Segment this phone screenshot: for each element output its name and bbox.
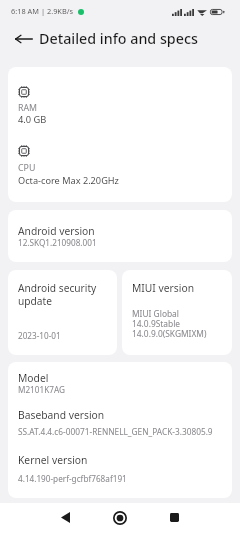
staticText: 4.14.190-perf-gcfbf768af191: [18, 473, 127, 484]
staticText: Kernel version: [18, 453, 88, 467]
button[interactable]: Back: [11, 26, 37, 52]
button[interactable]: MIUI version: [122, 270, 232, 355]
button[interactable]: RAM: [8, 67, 232, 202]
staticText: Octa-core Max 2.20GHz: [18, 174, 119, 187]
button[interactable]: Back: [50, 502, 80, 532]
staticText: MIUI version: [132, 281, 194, 295]
staticText: 6:18 AM | 2.9KB/s: [11, 6, 74, 16]
staticText: 12.SKQ1.210908.001: [18, 237, 97, 248]
staticText: 2023-10-01: [18, 330, 61, 341]
staticText: M2101K7AG: [18, 384, 65, 395]
staticText: Baseband version: [18, 408, 105, 422]
button[interactable]: Model: [8, 362, 232, 498]
staticText: Android version: [18, 224, 95, 238]
button[interactable]: Home: [105, 503, 135, 533]
staticText: 4.0 GB: [18, 113, 47, 126]
button[interactable]: Android version: [8, 210, 232, 262]
staticText: Model: [18, 371, 49, 385]
button[interactable]: Recent apps: [159, 502, 189, 532]
staticText: MIUI Global 14.0.9Stable 14.0.9.0(SKGMIX…: [132, 308, 207, 339]
button[interactable]: Android security update: [8, 270, 117, 355]
staticText: Detailed info and specs: [39, 29, 198, 48]
staticText: CPU: [18, 162, 36, 174]
staticText: SS.AT.4.4.c6-00071-RENNELL_GEN_PACK-3.30…: [18, 426, 213, 437]
staticText: RAM: [18, 102, 38, 114]
staticText: Android security update: [18, 281, 97, 308]
